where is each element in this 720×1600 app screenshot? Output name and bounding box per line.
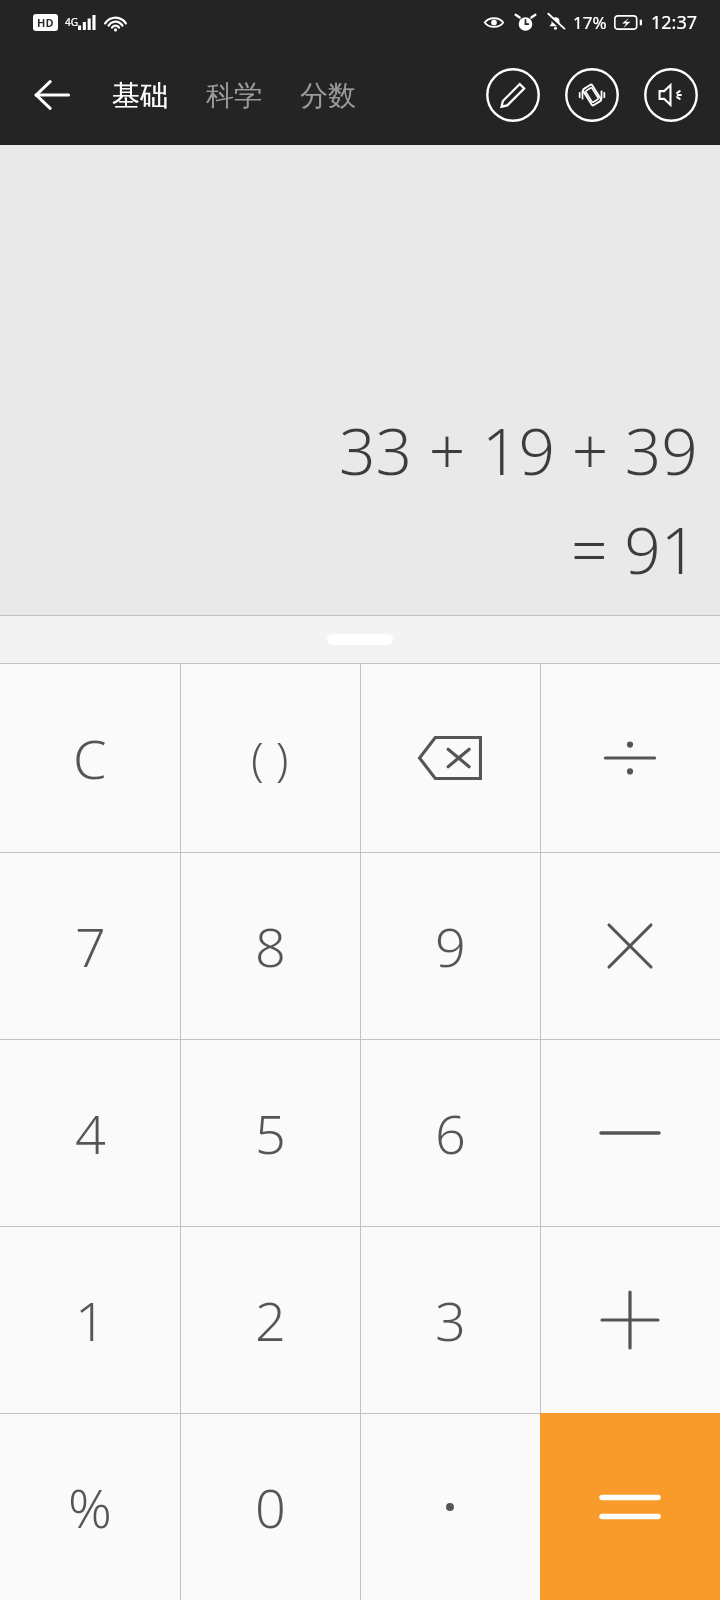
button[interactable]: 科学 — [198, 66, 270, 125]
staticText: 4G — [65, 15, 78, 29]
button[interactable]: Edit — [486, 68, 540, 122]
button[interactable]: 7 — [0, 852, 180, 1039]
other: Backspace — [418, 736, 482, 780]
staticText: 0 — [255, 1470, 286, 1544]
staticText: % — [68, 1470, 112, 1544]
staticText: 7 — [75, 909, 106, 983]
other: Divide — [602, 730, 658, 786]
button[interactable]: Multiply — [540, 852, 720, 1039]
button[interactable]: 1 — [0, 1226, 180, 1413]
staticText: 6 — [435, 1096, 466, 1170]
staticText: 2 — [255, 1283, 286, 1357]
button[interactable]: 5 — [180, 1039, 360, 1226]
button[interactable]: Back — [16, 59, 88, 131]
button[interactable]: ( ) — [180, 664, 360, 852]
button[interactable]: Vibrate — [565, 68, 619, 122]
button[interactable]: % — [0, 1413, 180, 1600]
staticText: 3 — [435, 1283, 466, 1357]
button[interactable]: Decimal point — [360, 1413, 540, 1600]
staticText: 基础 — [112, 78, 168, 113]
other: Multiply — [605, 921, 655, 971]
staticText: 17% — [573, 11, 607, 34]
staticText: 8 — [255, 909, 286, 983]
staticText: HD — [37, 15, 54, 30]
staticText: C — [73, 721, 107, 795]
button[interactable]: 6 — [360, 1039, 540, 1226]
staticText: 12:37 — [651, 10, 698, 35]
button[interactable]: Backspace — [360, 664, 540, 852]
button[interactable]: 基础 — [104, 66, 176, 125]
button[interactable]: 3 — [360, 1226, 540, 1413]
button[interactable]: 8 — [180, 852, 360, 1039]
staticText: 分数 — [300, 78, 356, 113]
button[interactable]: 0 — [180, 1413, 360, 1600]
staticText: 4 — [75, 1096, 106, 1170]
button[interactable]: Divide — [540, 664, 720, 852]
staticText: 1 — [75, 1283, 106, 1357]
staticText: 科学 — [206, 78, 262, 113]
button[interactable]: Minus — [540, 1039, 720, 1226]
staticText: = 91 — [571, 506, 698, 593]
button[interactable]: Plus — [540, 1226, 720, 1413]
other: Equals — [602, 1490, 658, 1524]
staticText: ( ) — [251, 727, 289, 790]
button[interactable]: C — [0, 664, 180, 852]
staticText: 9 — [435, 909, 466, 983]
staticText: 33 + 19 + 39 — [339, 407, 698, 494]
other: Plus — [602, 1292, 658, 1348]
button[interactable]: 4 — [0, 1039, 180, 1226]
staticText: 5 — [255, 1096, 286, 1170]
button[interactable]: Sound — [644, 68, 698, 122]
other: Decimal point — [441, 1498, 459, 1516]
button[interactable]: Equals — [540, 1413, 720, 1600]
other: Minus — [601, 1125, 659, 1141]
button[interactable]: 2 — [180, 1226, 360, 1413]
button[interactable]: 分数 — [292, 66, 364, 125]
button[interactable]: 9 — [360, 852, 540, 1039]
